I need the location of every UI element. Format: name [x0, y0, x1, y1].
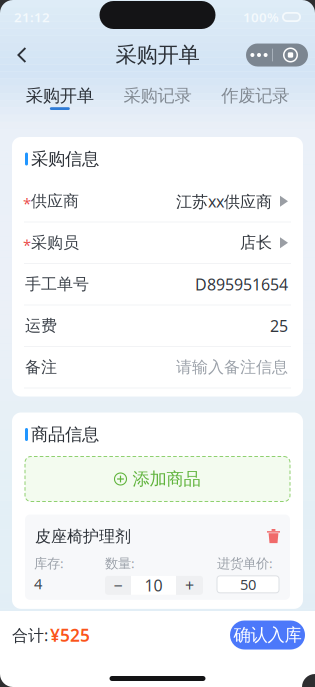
staticText: ¥525: [50, 623, 90, 646]
staticText: 请输入备注信息: [176, 357, 288, 377]
button[interactable]: More options: [246, 43, 308, 66]
button[interactable]: 备注: [12, 347, 303, 387]
button[interactable]: Decrease quantity: [105, 576, 131, 595]
button[interactable]: 采购记录: [109, 76, 206, 116]
staticText: 采购开单: [115, 42, 199, 68]
staticText: +: [185, 575, 194, 596]
staticText: 采购员: [31, 233, 79, 253]
staticText: 进货单价:: [217, 554, 273, 572]
staticText: *: [23, 235, 31, 254]
staticText: 确认入库: [233, 624, 301, 646]
staticText: 店长: [240, 233, 272, 253]
staticText: 采购记录: [123, 85, 191, 106]
staticText: 商品信息: [31, 424, 99, 445]
staticText: 供应商: [31, 191, 79, 211]
button[interactable]: Increase quantity: [176, 576, 203, 595]
staticText: 江苏xx供应商: [176, 191, 272, 212]
staticText: 数量:: [105, 554, 135, 572]
button[interactable]: 确认入库: [230, 620, 305, 649]
staticText: 皮座椅护理剂: [35, 526, 131, 546]
staticText: *: [23, 193, 31, 213]
staticText: 备注: [25, 357, 57, 377]
button[interactable]: Back: [7, 38, 37, 72]
button[interactable]: Delete item: [259, 529, 280, 544]
staticText: −: [113, 575, 122, 596]
staticText: D895951654: [195, 274, 288, 295]
button[interactable]: 作废记录: [206, 76, 304, 116]
staticText: 21:12: [14, 8, 50, 26]
button[interactable]: 添加商品: [12, 456, 303, 514]
staticText: 运费: [25, 316, 57, 336]
staticText: 添加商品: [132, 468, 200, 490]
button[interactable]: 手工单号: [12, 264, 303, 304]
button[interactable]: 运费: [12, 305, 303, 346]
staticText: 作废记录: [221, 85, 289, 106]
button[interactable]: 采购开单: [11, 76, 109, 116]
button[interactable]: *: [12, 181, 303, 221]
staticText: 库存:: [34, 554, 64, 572]
staticText: 合计:: [12, 624, 48, 646]
staticText: 25: [270, 315, 288, 336]
staticText: 50: [240, 575, 256, 594]
staticText: 4: [34, 574, 42, 593]
button[interactable]: *: [12, 222, 303, 263]
staticText: 采购开单: [26, 85, 94, 106]
staticText: 手工单号: [25, 274, 89, 294]
staticText: 100%: [243, 8, 279, 26]
staticText: 采购信息: [31, 148, 99, 170]
staticText: 10: [144, 575, 162, 596]
